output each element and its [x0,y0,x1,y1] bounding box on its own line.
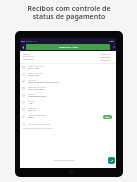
staticText: Servicos de consultoria mensal [28,81,59,84]
staticText: Recibos com controle de status de pagame… [27,4,111,21]
staticText: 1 de 1 [28,102,34,105]
staticText: R$ 0,00 [28,109,36,112]
staticText: Informacoes adicionais [28,123,50,126]
other: Descricao [22,80,25,83]
other: Forma de pagamento [22,87,25,90]
button[interactable]: Data de emissao [20,71,116,78]
staticText: Recibo referente ao mes de maio [23,127,53,130]
staticText: Forma de pagamento [28,86,47,88]
staticText: Pago [28,116,34,119]
button[interactable]: Pago [103,115,112,119]
staticText: Situacao [28,93,36,95]
other: Data de emissao [22,73,25,76]
staticText: Recibos Pro [26,40,37,43]
button[interactable]: Situacao [20,92,116,99]
staticText: Vencimento [100,53,111,56]
staticText: Status do pagamento [28,114,47,116]
staticText: Desconto [28,107,36,109]
button[interactable]: Forma de pagamento [20,85,116,92]
button[interactable]: Parcelas [20,99,116,106]
staticText: Gerar recibo em PDF [54,159,75,162]
button[interactable]: Informacoes adicionais [22,121,116,127]
staticText: Parcelas [28,100,36,102]
staticText: Data de emissao [28,72,43,74]
staticText: 03/05/2024 [28,74,40,77]
staticText: Emitente [23,53,31,55]
button[interactable]: New receipt [108,157,115,164]
other: Numero do recibo [22,66,25,69]
button[interactable]: Desconto [20,106,116,113]
button[interactable]: Recibo 0012 - pago [26,44,110,50]
staticText: 100% [109,40,115,43]
other: Parcelas [22,101,25,104]
other: Status do pagamento [22,115,25,118]
staticText: Recibo 0012 - pago [59,46,78,49]
button[interactable]: Back [20,44,26,50]
staticText: Valor total [23,58,34,61]
staticText: 10/05/2024 [99,56,111,59]
button[interactable]: Gerar recibo em PDF [54,159,75,162]
staticText: Numero do recibo [28,65,44,67]
button[interactable]: Numero do recibo [20,64,116,71]
button[interactable]: Descricao [20,78,116,85]
staticText: Pago [105,116,110,118]
staticText: Aguardando baixa [28,95,47,98]
staticText: Descricao [28,79,37,81]
other: Situacao [22,94,25,97]
staticText: 0012 / 2024 [28,67,40,70]
staticText: R$ 420,00 [101,59,111,62]
staticText: Joao da Silva [23,55,34,57]
staticText: 9:41 [21,40,25,43]
staticText: Boleto bancario [28,88,44,91]
button[interactable]: More options [111,44,116,50]
other: Desconto [22,108,25,111]
button[interactable]: Status do pagamento [20,113,116,120]
